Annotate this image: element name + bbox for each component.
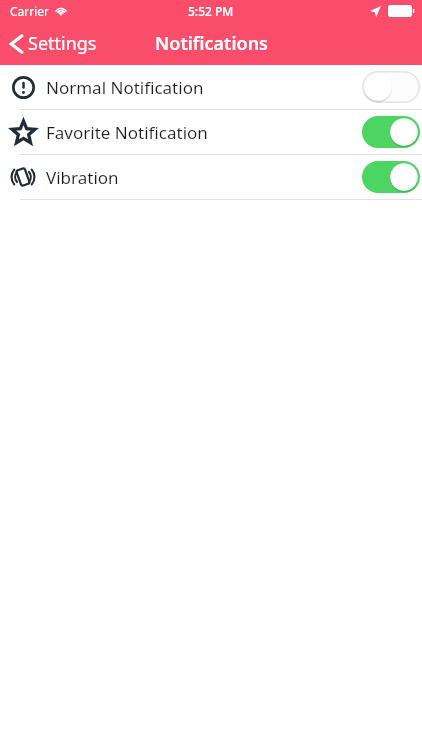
button[interactable]: Off (362, 71, 420, 103)
button[interactable]: On (362, 161, 420, 193)
staticText: Carrier (10, 3, 50, 19)
staticText: Favorite Notification (46, 121, 362, 144)
staticText: 5:52 PM (188, 3, 234, 19)
staticText: Vibration (46, 166, 362, 189)
button[interactable]: Favorite Notification (0, 110, 422, 154)
button[interactable]: Vibration (0, 155, 422, 199)
staticText: Notifications (155, 31, 268, 56)
staticText: Normal Notification (46, 76, 362, 99)
staticText: Settings (28, 31, 97, 56)
button[interactable]: Normal Notification (0, 65, 422, 109)
button[interactable]: Settings (0, 27, 107, 60)
button[interactable]: On (362, 116, 420, 148)
